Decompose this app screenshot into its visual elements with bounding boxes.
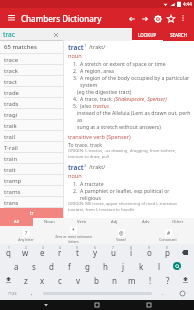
staticText: i: [130, 247, 133, 258]
button[interactable]: l: [150, 259, 168, 273]
button[interactable]: All: [0, 218, 33, 226]
button[interactable]: m: [123, 273, 141, 287]
staticText: 4:44: [183, 1, 192, 7]
button[interactable]: h: [96, 259, 114, 273]
button[interactable]: Emoji: [171, 287, 194, 299]
button[interactable]: !: [141, 273, 159, 287]
button[interactable]: Home: [91, 300, 103, 310]
button[interactable]: 4: [51, 245, 68, 259]
button[interactable]: tr: [0, 208, 63, 218]
button[interactable]: g: [78, 259, 96, 273]
staticText: 1: [8, 246, 10, 250]
button[interactable]: Comma: [24, 287, 40, 299]
button[interactable]: k: [132, 259, 150, 273]
button[interactable]: ?: [4, 229, 48, 242]
button[interactable]: 9: [140, 245, 158, 259]
button[interactable]: Favourite: [164, 12, 177, 25]
button[interactable]: Recents: [143, 300, 155, 310]
staticText: 1: [84, 43, 87, 48]
button[interactable]: trail: [0, 131, 63, 142]
button[interactable]: Other: [162, 218, 194, 226]
staticText: @: [119, 230, 124, 237]
staticText: track: [4, 67, 18, 75]
staticText: g: [85, 261, 90, 272]
staticText: Consonant: [159, 237, 177, 242]
button[interactable]: Period: [155, 287, 171, 299]
staticText: train: [4, 155, 18, 163]
button[interactable]: 7: [104, 245, 122, 259]
button[interactable]: 0: [158, 245, 176, 259]
button[interactable]: Menu: [5, 12, 17, 24]
staticText: e: [40, 247, 45, 258]
button[interactable]: v: [69, 273, 87, 287]
button[interactable]: n: [105, 273, 123, 287]
button[interactable]: Search: [168, 259, 186, 273]
staticText: n: [112, 275, 117, 286]
button[interactable]: trans: [0, 197, 63, 208]
staticText: a: [14, 261, 19, 272]
button[interactable]: tramp: [0, 175, 63, 186]
button[interactable]: j: [114, 259, 132, 273]
button[interactable]: 5: [68, 245, 86, 259]
button[interactable]: ?123: [0, 287, 24, 299]
button[interactable]: @: [99, 229, 143, 242]
button[interactable]: traik: [0, 120, 63, 131]
button[interactable]: More options: [177, 12, 189, 24]
button[interactable]: Clear: [52, 31, 60, 39]
staticText: 5: [76, 246, 78, 250]
button[interactable]: Verb: [66, 218, 98, 226]
button[interactable]: f: [60, 259, 78, 273]
staticText: ,: [31, 289, 33, 297]
button[interactable]: tract: [0, 76, 63, 87]
button[interactable]: Shift: [0, 273, 17, 287]
button[interactable]: ?: [159, 273, 177, 287]
button[interactable]: trade: [0, 87, 63, 98]
staticText: transitive verb (Spenser): [68, 133, 131, 140]
button[interactable]: Settings: [151, 12, 164, 25]
button[interactable]: Adj: [98, 218, 130, 226]
button[interactable]: Backspace: [176, 245, 194, 259]
staticText: A tractate: [80, 180, 104, 187]
staticText: o: [147, 247, 152, 258]
button[interactable]: trait: [0, 164, 63, 175]
button[interactable]: b: [87, 273, 105, 287]
button[interactable]: train: [0, 153, 63, 164]
staticText: ?123: [8, 291, 17, 296]
staticText: Any letter: [18, 237, 34, 242]
staticText: A pamphlet or leaflet, esp political or …: [80, 187, 191, 201]
button[interactable]: Back: [40, 300, 52, 310]
button[interactable]: c: [51, 273, 69, 287]
button[interactable]: 6: [86, 245, 104, 259]
button[interactable]: SEARCH: [163, 28, 194, 41]
button[interactable]: 8: [122, 245, 140, 259]
staticText: A region, area: [80, 67, 115, 74]
button[interactable]: Space: [40, 287, 155, 299]
button[interactable]: 2: [17, 245, 34, 259]
button[interactable]: LOOKUP: [132, 28, 163, 41]
button[interactable]: Shift: [177, 273, 194, 287]
button[interactable]: *: [51, 226, 95, 244]
button[interactable]: Noun: [33, 218, 66, 226]
button[interactable]: trams: [0, 186, 63, 197]
button[interactable]: z: [17, 273, 34, 287]
staticText: f: [68, 261, 71, 272]
button[interactable]: trace: [0, 54, 63, 65]
staticText: 6: [94, 246, 96, 250]
staticText: trans: [4, 199, 19, 207]
button[interactable]: #: [146, 229, 190, 242]
staticText: Vowel: [116, 237, 126, 242]
button[interactable]: trads: [0, 98, 63, 109]
button[interactable]: a: [8, 259, 25, 273]
button[interactable]: x: [34, 273, 51, 287]
button[interactable]: Forward: [138, 12, 151, 25]
button[interactable]: T-rail: [0, 142, 63, 153]
button[interactable]: track: [0, 65, 63, 76]
button[interactable]: d: [42, 259, 60, 273]
button[interactable]: 3: [34, 245, 51, 259]
button[interactable]: s: [25, 259, 42, 273]
staticText: 5.: [73, 102, 78, 109]
button[interactable]: Back: [125, 12, 138, 25]
button[interactable]: tragi: [0, 109, 63, 120]
button[interactable]: Adv: [130, 218, 162, 226]
button[interactable]: 1: [0, 245, 17, 259]
